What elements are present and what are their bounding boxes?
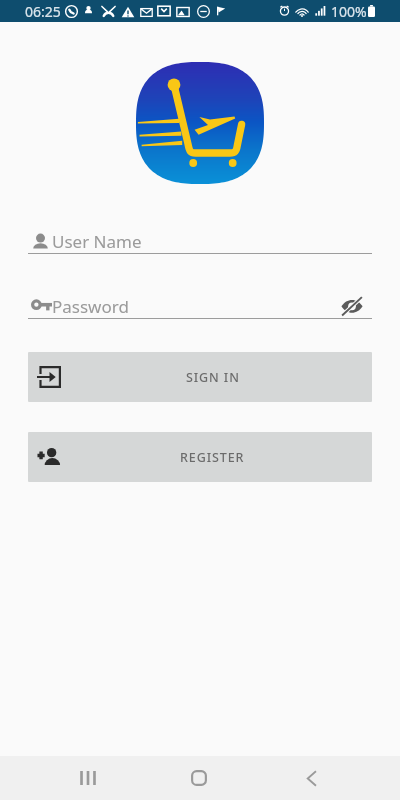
staticText: User Name xyxy=(52,230,142,253)
staticText: REGISTER xyxy=(180,449,245,466)
staticText: SIGN IN xyxy=(186,369,240,386)
staticText: 100% xyxy=(331,2,367,21)
staticText: Password xyxy=(52,295,129,318)
button[interactable]: Recents xyxy=(58,756,118,800)
button[interactable]: REGISTER xyxy=(28,432,372,482)
button[interactable]: SIGN IN xyxy=(28,352,372,402)
button[interactable]: Show password xyxy=(340,294,364,318)
staticText: 06:25 xyxy=(25,2,61,21)
button[interactable]: Back xyxy=(281,756,341,800)
button[interactable]: Home xyxy=(169,756,229,800)
